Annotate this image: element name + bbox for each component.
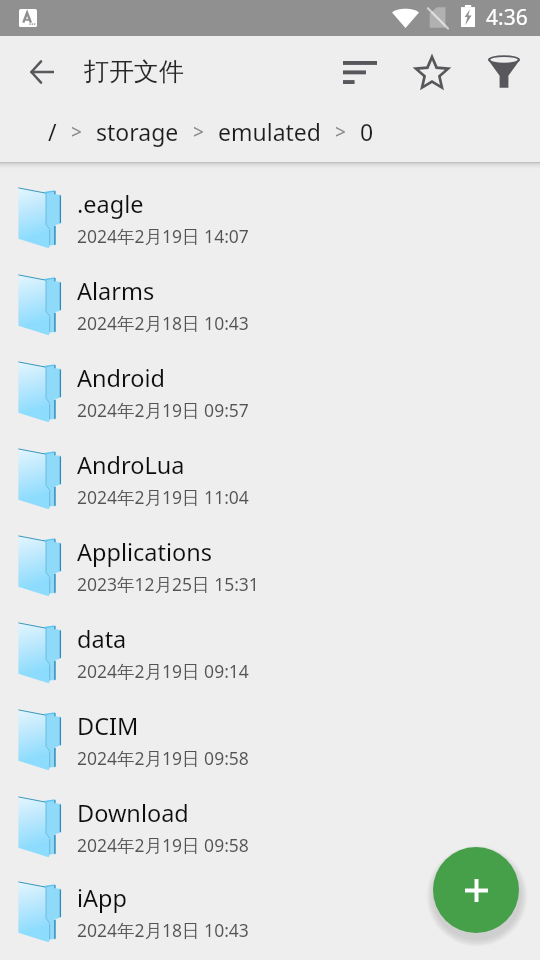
staticText: DCIM [77, 710, 139, 742]
staticText: 2024年2月18日 10:43 [77, 918, 249, 942]
staticText: 2024年2月19日 14:07 [77, 224, 249, 248]
staticText: .eagle [77, 188, 144, 220]
button[interactable]: iApp [0, 870, 540, 954]
button[interactable]: data [0, 609, 540, 696]
button[interactable]: Alarms [0, 261, 540, 348]
staticText: 打开文件 [84, 56, 184, 87]
staticText: data [77, 623, 127, 655]
staticText: AndroLua [77, 449, 185, 481]
staticText: Download [77, 797, 189, 829]
button[interactable]: storage [93, 110, 182, 153]
button[interactable]: Download [0, 783, 540, 870]
button[interactable]: / [45, 110, 60, 153]
staticText: Alarms [77, 275, 155, 307]
staticText: 2024年2月19日 11:04 [77, 485, 249, 509]
staticText: > [193, 119, 204, 145]
button[interactable]: AndroLua [0, 435, 540, 522]
button[interactable]: Filter [480, 48, 528, 96]
staticText: Applications [77, 536, 213, 568]
staticText: 2024年2月19日 09:58 [77, 746, 249, 770]
staticText: > [335, 119, 346, 145]
staticText: 2023年12月25日 15:31 [77, 572, 259, 596]
staticText: 0 [360, 116, 374, 147]
staticText: 2024年2月19日 09:58 [77, 833, 249, 857]
staticText: > [71, 119, 82, 145]
staticText: 2024年2月18日 10:43 [77, 311, 249, 335]
button[interactable]: DCIM [0, 696, 540, 783]
staticText: 2024年2月19日 09:57 [77, 398, 249, 422]
button[interactable]: 0 [357, 110, 377, 153]
staticText: / [48, 116, 57, 147]
button[interactable]: .eagle [0, 174, 540, 261]
button[interactable]: Favorite [408, 48, 456, 96]
staticText: 2024年2月19日 09:14 [77, 659, 249, 683]
staticText: storage [96, 116, 179, 147]
staticText: 4:36 [486, 3, 528, 32]
button[interactable]: Android [0, 348, 540, 435]
button[interactable]: Add [433, 847, 519, 933]
button[interactable]: emulated [215, 110, 324, 153]
button[interactable]: Back [18, 48, 66, 96]
staticText: Android [77, 362, 165, 394]
staticText: iApp [77, 882, 127, 914]
button[interactable]: Applications [0, 522, 540, 609]
button[interactable]: Sort [336, 48, 384, 96]
staticText: emulated [218, 116, 321, 147]
